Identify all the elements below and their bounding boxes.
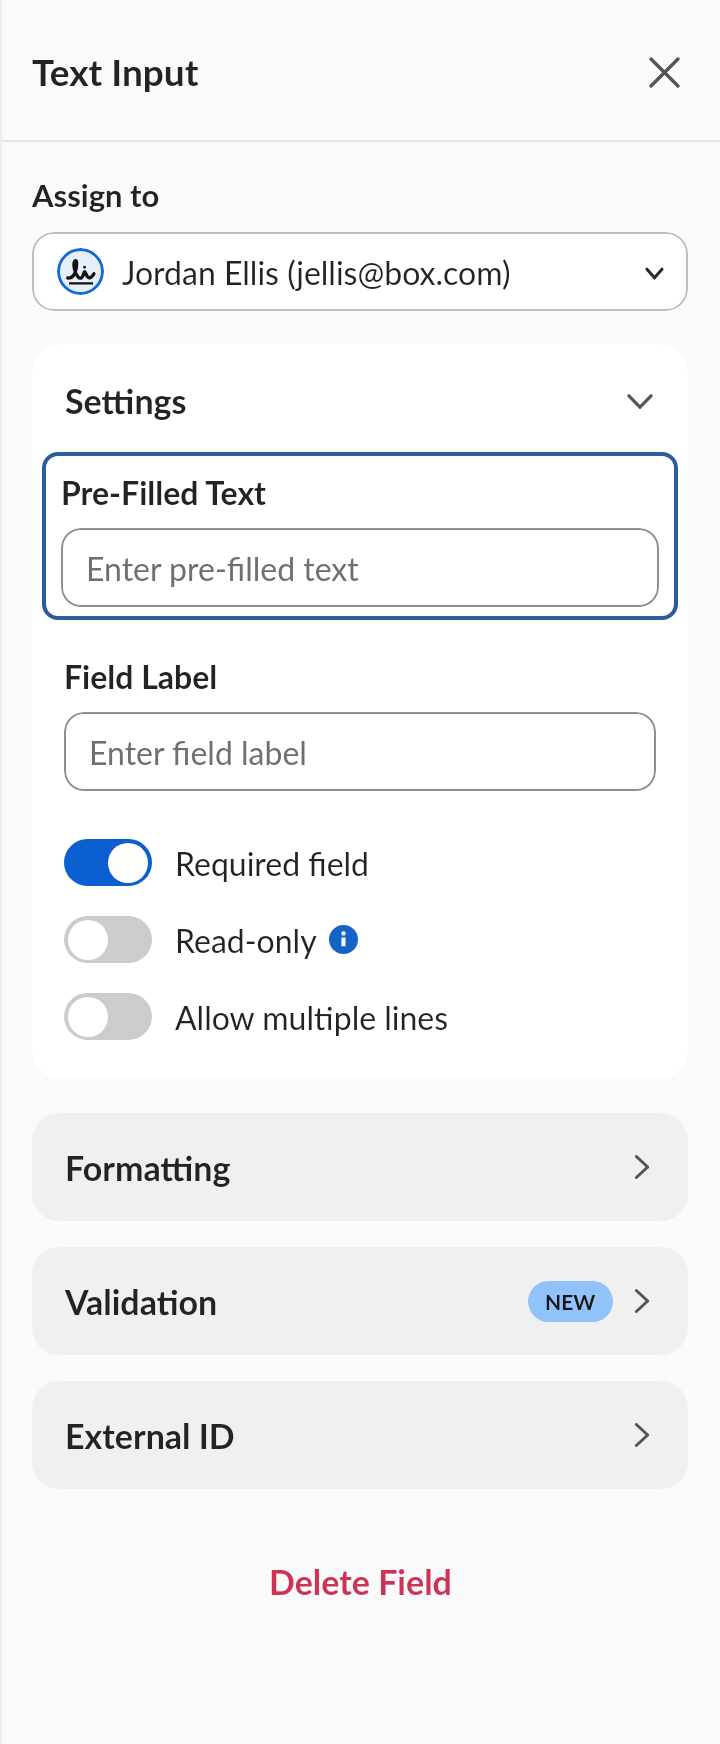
button[interactable]: Jordan Ellis (jellis@box.com) [32,232,688,311]
staticText: Enter field label [89,733,307,771]
button[interactable]: Formatting [32,1113,688,1221]
other: Open [633,1421,651,1449]
button[interactable]: Required field [64,839,656,886]
button[interactable]: Close [632,40,696,104]
staticText: NEW [545,1289,596,1314]
staticText: Formatting [65,1147,231,1188]
button[interactable]: Settings [32,344,688,452]
staticText: Pre-Filled Text [61,473,267,511]
staticText: Jordan Ellis (jellis@box.com) [122,253,511,291]
button[interactable]: Validation [32,1247,688,1355]
staticText: Allow multiple lines [175,998,449,1036]
staticText: External ID [65,1415,235,1456]
other: Open [633,1287,651,1315]
staticText: Assign to [32,176,160,213]
button[interactable]: Read-only [64,916,656,963]
button[interactable]: More info [329,925,358,954]
staticText: Settings [65,380,187,421]
other: Expand [625,392,655,411]
staticText: Field Label [64,657,218,695]
button[interactable]: Allow multiple lines [64,993,656,1040]
button[interactable]: Enter field label [64,712,656,791]
staticText: Read-only [175,921,317,959]
button[interactable]: Enter pre-filled text [61,528,659,607]
staticText: Validation [65,1281,218,1322]
other: Expand [643,265,666,282]
staticText: Text Input [32,49,199,93]
staticText: Required field [175,844,370,882]
staticText: Delete Field [269,1561,452,1602]
button[interactable]: Delete Field [249,1552,472,1611]
staticText: Enter pre-filled text [86,549,359,587]
other: Open [633,1153,651,1181]
button[interactable]: External ID [32,1381,688,1489]
